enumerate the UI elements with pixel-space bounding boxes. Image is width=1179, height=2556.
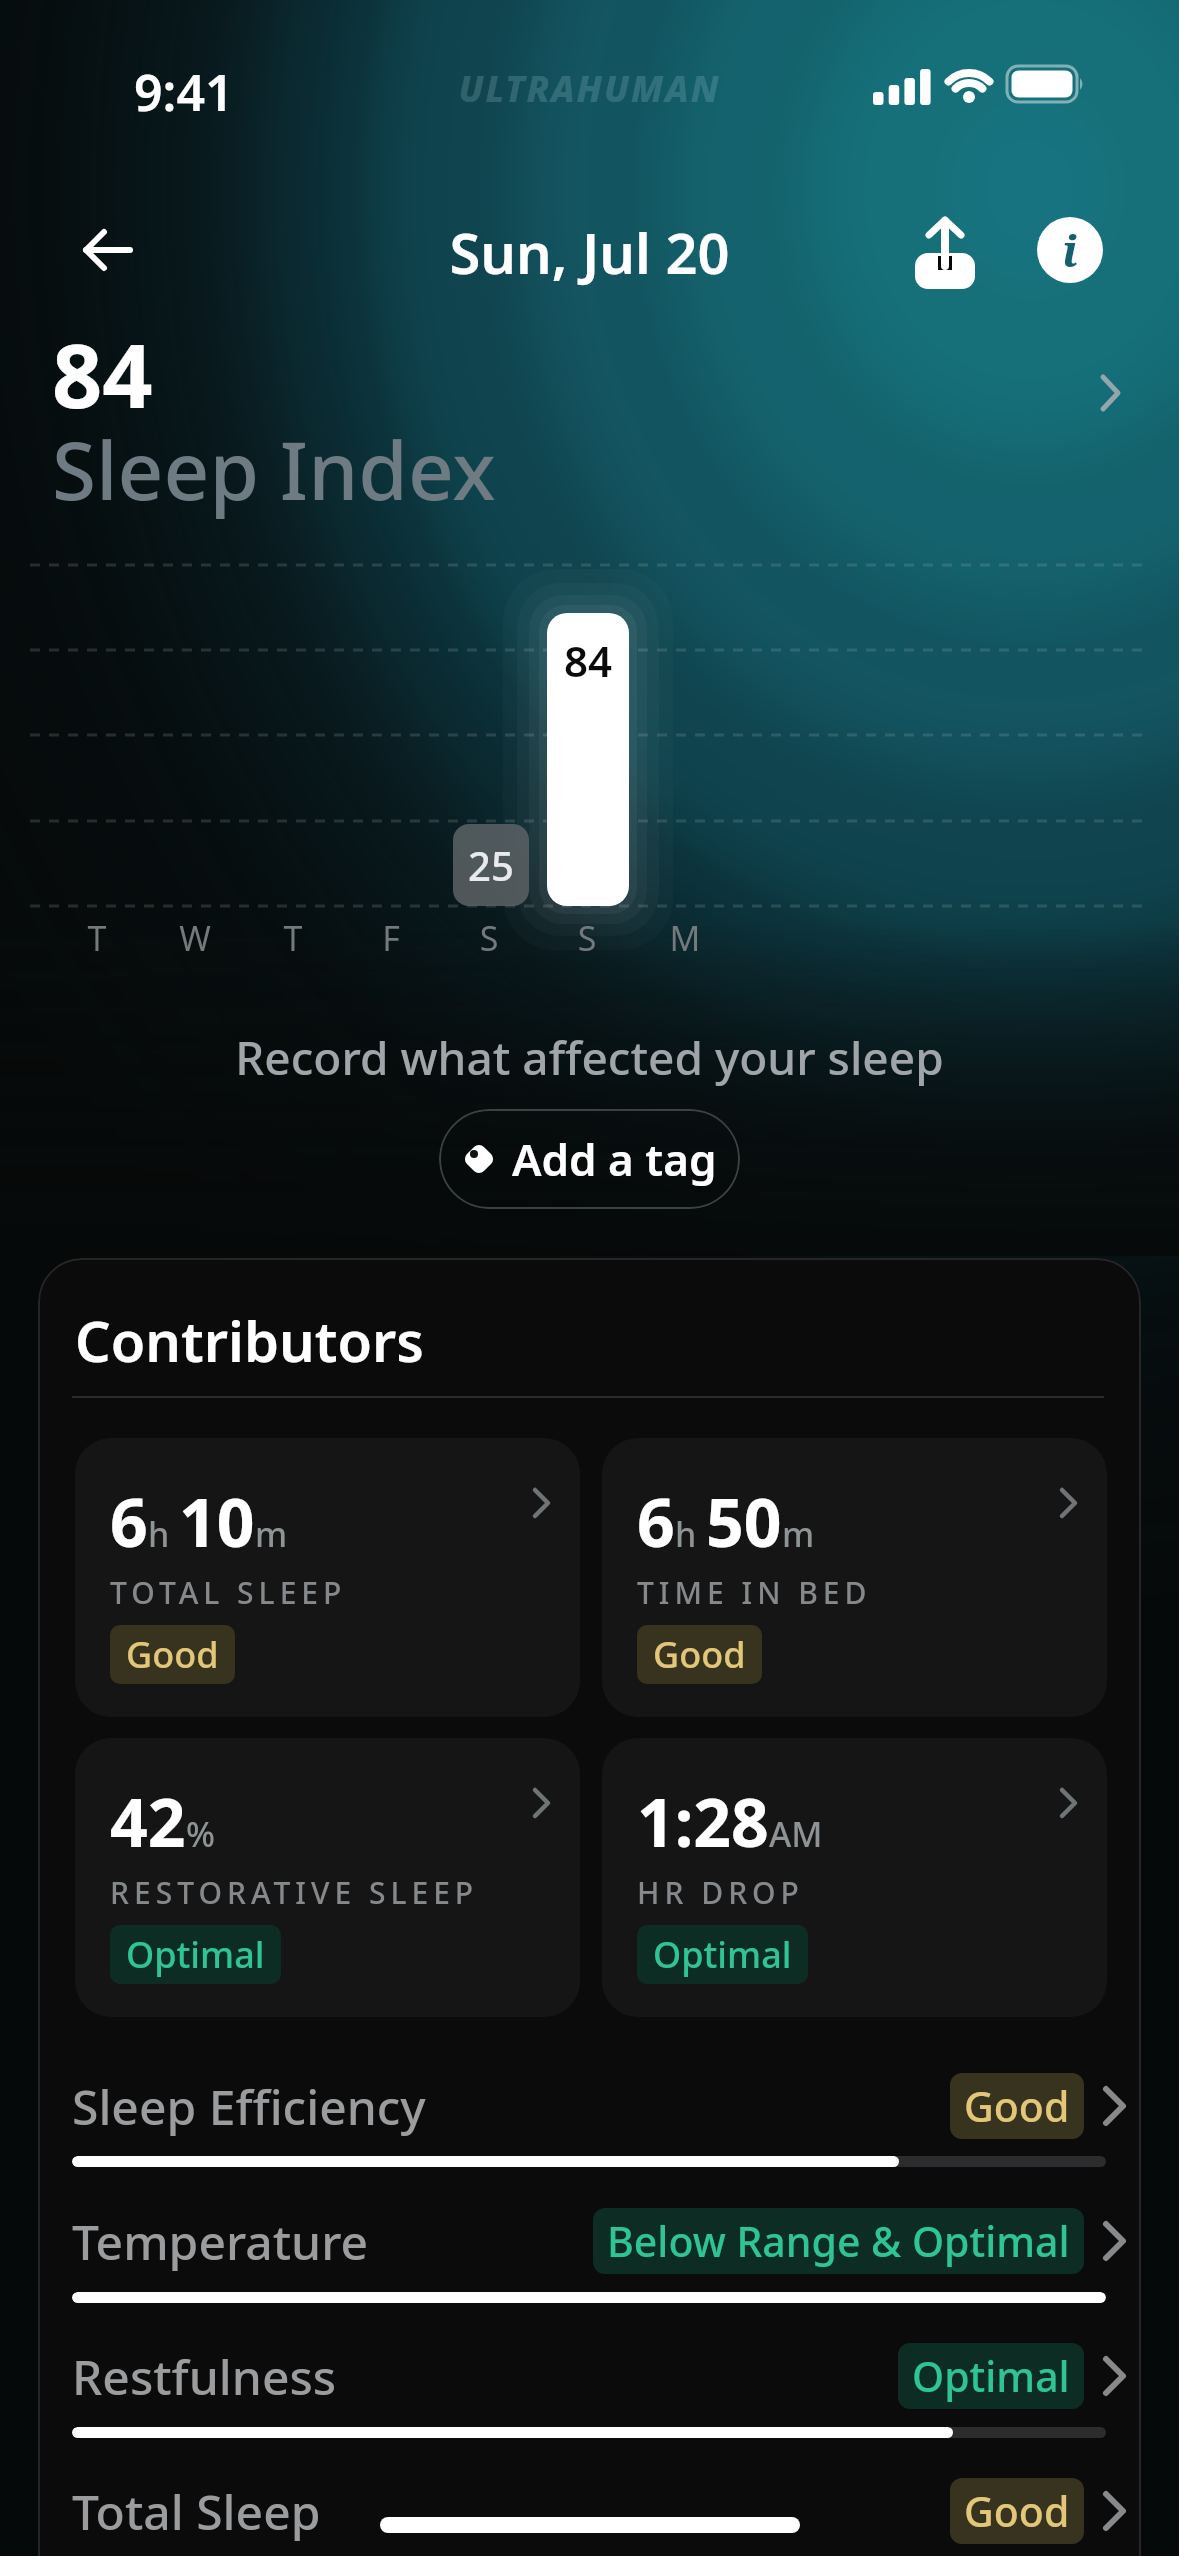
staticText: ULTRAHUMAN [0, 64, 1179, 113]
staticText: Optimal [653, 1930, 792, 1979]
staticText: Record what affected your sleep [0, 1026, 1179, 1089]
staticText: m [255, 1511, 288, 1557]
staticText: i [1062, 220, 1078, 280]
staticText: AM [769, 1811, 823, 1857]
staticText: Sun, Jul 20 [0, 214, 1179, 290]
staticText: Sleep Index [52, 414, 496, 523]
staticText: Good [653, 1630, 746, 1679]
staticText: m [782, 1511, 815, 1557]
staticText: Total Sleep [72, 2479, 321, 2544]
button[interactable]: 1:28 [602, 1738, 1107, 2017]
staticText: T [268, 915, 318, 961]
button[interactable]: Add a tag [439, 1109, 740, 1209]
staticText: 42 [110, 1776, 186, 1866]
staticText: Temperature [72, 2209, 369, 2274]
staticText: T [72, 915, 122, 961]
staticText: Sleep Efficiency [72, 2074, 426, 2139]
staticText: h [148, 1511, 179, 1557]
staticText: 84 [560, 632, 616, 689]
staticText: TOTAL SLEEP [110, 1572, 347, 1613]
staticText: Good [964, 2078, 1070, 2134]
staticText: Optimal [126, 1930, 265, 1979]
staticText: Restfulness [72, 2344, 337, 2409]
staticText: F [366, 915, 416, 961]
staticText: S [562, 915, 612, 961]
staticText: 25 [463, 838, 519, 892]
staticText: Good [126, 1630, 219, 1679]
button[interactable] [70, 212, 146, 288]
staticText: Contributors [75, 1302, 424, 1378]
button[interactable]: 6 [602, 1438, 1107, 1717]
staticText: 1:28 [637, 1776, 769, 1866]
staticText: HR DROP [637, 1872, 804, 1913]
staticText: 9:41 [134, 58, 234, 126]
button[interactable]: 42 [75, 1738, 580, 2017]
button[interactable]: Temperature [0, 2201, 1179, 2281]
button[interactable]: Restfulness [0, 2336, 1179, 2416]
staticText: RESTORATIVE SLEEP [110, 1872, 479, 1913]
staticText: TIME IN BED [637, 1572, 872, 1613]
button[interactable]: Total Sleep [0, 2471, 1179, 2551]
staticText: M [660, 915, 710, 961]
button[interactable]: i [1030, 210, 1110, 290]
staticText: S [464, 915, 514, 961]
button[interactable]: Sleep Efficiency [0, 2066, 1179, 2146]
staticText: 6 [637, 1476, 675, 1566]
staticText: 6 [110, 1476, 148, 1566]
staticText: % [186, 1811, 215, 1857]
staticText: Below Range & Optimal [607, 2213, 1070, 2269]
staticText: 50 [706, 1476, 782, 1566]
staticText: Add a tag [512, 1129, 717, 1189]
staticText: 10 [179, 1476, 255, 1566]
staticText: Optimal [912, 2348, 1070, 2404]
staticText: W [170, 915, 220, 961]
staticText: 84 [52, 314, 153, 434]
staticText: Good [964, 2483, 1070, 2539]
button[interactable] [900, 208, 990, 298]
staticText: h [675, 1511, 706, 1557]
button[interactable]: 6 [75, 1438, 580, 1717]
